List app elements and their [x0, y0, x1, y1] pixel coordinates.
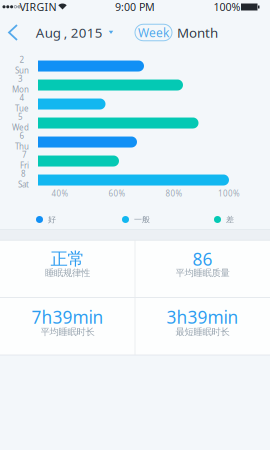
- staticText: 平均睡眠时长: [40, 326, 94, 338]
- staticText: Fri: [20, 160, 29, 171]
- staticText: 100%: [218, 188, 240, 199]
- staticText: 正常: [50, 248, 84, 270]
- staticText: 100%: [213, 0, 240, 14]
- staticText: Mon: [12, 84, 29, 95]
- staticText: 7h39min: [31, 305, 103, 328]
- staticText: Tue: [15, 103, 29, 114]
- staticText: 好: [48, 215, 56, 224]
- button[interactable]: Month: [173, 20, 222, 45]
- button[interactable]: Back: [2, 19, 24, 46]
- staticText: Month: [177, 24, 218, 41]
- staticText: 8: [21, 168, 26, 179]
- staticText: Wed: [12, 122, 29, 133]
- staticText: 3h39min: [166, 305, 238, 328]
- staticText: 睡眠规律性: [45, 267, 90, 279]
- staticText: 最短睡眠时长: [175, 326, 229, 338]
- staticText: Sat: [18, 179, 29, 190]
- staticText: Sun: [15, 65, 29, 76]
- staticText: 差: [226, 215, 234, 224]
- button[interactable]: Week: [134, 24, 172, 41]
- staticText: 80%: [165, 188, 182, 199]
- staticText: Week: [138, 24, 169, 40]
- staticText: 60%: [108, 188, 125, 199]
- staticText: Thu: [15, 141, 29, 152]
- staticText: 2: [19, 54, 24, 65]
- staticText: 9:00 PM: [115, 0, 155, 14]
- staticText: 5: [18, 111, 23, 122]
- staticText: 3: [18, 73, 23, 84]
- staticText: 4: [19, 92, 24, 103]
- staticText: 一般: [134, 215, 150, 224]
- staticText: VIRGIN: [19, 0, 56, 14]
- staticText: 平均睡眠质量: [175, 267, 229, 279]
- staticText: Aug , 2015: [36, 24, 103, 41]
- button[interactable]: Choose month: [36, 24, 113, 41]
- staticText: 86: [192, 247, 212, 270]
- staticText: 40%: [51, 188, 68, 199]
- staticText: 6: [19, 130, 24, 141]
- staticText: 7: [22, 149, 27, 160]
